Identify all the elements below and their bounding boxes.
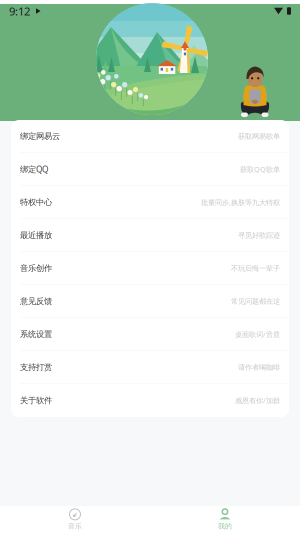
staticText: 音乐创作 (20, 263, 52, 273)
button[interactable]: 意见反馈 (11, 285, 289, 318)
staticText: 获取网易歌单 (238, 132, 280, 141)
staticText: 常见问题都在这 (231, 297, 280, 306)
staticText: 我的 (218, 522, 232, 531)
button[interactable]: 我的 (150, 506, 300, 533)
staticText: 音乐 (68, 522, 82, 531)
button[interactable]: 支持打赏 (11, 351, 289, 384)
button[interactable]: 关于软件 (11, 384, 289, 417)
staticText: 绑定网易云 (20, 131, 60, 141)
button[interactable]: 系统设置 (11, 318, 289, 351)
button[interactable]: 绑定网易云 (11, 120, 289, 153)
staticText: 特权中心 (20, 197, 52, 207)
staticText: 意见反馈 (20, 296, 52, 306)
staticText: 系统设置 (20, 329, 52, 339)
staticText: 请作者喝咖啡 (238, 363, 280, 372)
staticText: 感恩有你/加群 (235, 396, 280, 405)
button[interactable]: 特权中心 (11, 186, 289, 219)
button[interactable]: 绑定QQ (11, 153, 289, 186)
staticText: 支持打赏 (20, 362, 52, 372)
staticText: 关于软件 (20, 395, 52, 406)
staticText: 寻觅好歌踪迹 (238, 231, 280, 240)
staticText: 9:12 (9, 3, 30, 19)
staticText: 不玩后悔一辈子 (231, 264, 280, 273)
button[interactable]: 音乐 (0, 506, 150, 533)
staticText: 最近播放 (20, 230, 52, 240)
staticText: 桌面歌词/音质 (235, 329, 280, 339)
staticText: 获取QQ歌单 (240, 164, 280, 174)
button[interactable]: 最近播放 (11, 219, 289, 252)
staticText: 绑定QQ (20, 164, 48, 175)
button[interactable]: 音乐创作 (11, 252, 289, 285)
staticText: 批量同步,换肤等九大特权 (201, 197, 280, 207)
